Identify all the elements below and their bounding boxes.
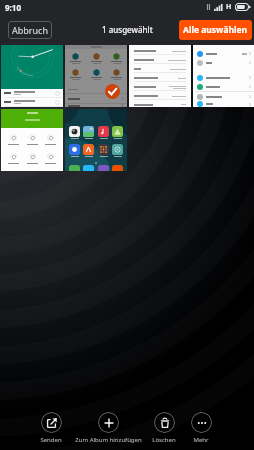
staticText: 9:10 (5, 2, 21, 13)
button[interactable] (65, 45, 127, 107)
button[interactable]: Abbruch (8, 21, 52, 39)
button[interactable] (1, 109, 63, 171)
button[interactable]: Mehr (156, 412, 246, 444)
button[interactable]: Zum Album hinzufügen (63, 412, 153, 444)
staticText: Senden (40, 436, 62, 444)
button[interactable]: Senden (6, 412, 96, 444)
button[interactable]: Löschen (119, 412, 209, 444)
button[interactable] (65, 109, 127, 171)
staticText: Alle auswählen (183, 24, 248, 36)
button[interactable] (1, 45, 63, 107)
button[interactable] (193, 45, 254, 107)
button[interactable]: Alle auswählen (179, 20, 252, 40)
staticText: Löschen (152, 436, 176, 444)
staticText: 1 ausgewählt (102, 24, 153, 35)
button[interactable] (129, 45, 191, 107)
staticText: Zum Album hinzufügen (75, 436, 142, 444)
staticText: Abbruch (12, 24, 48, 36)
staticText: H (226, 2, 232, 12)
staticText: Mehr (193, 436, 209, 444)
